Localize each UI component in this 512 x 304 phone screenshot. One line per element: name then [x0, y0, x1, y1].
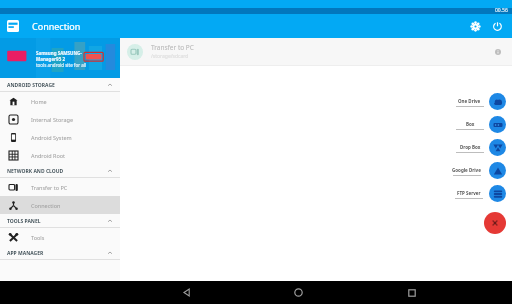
button[interactable]: Internal Storage [0, 110, 120, 128]
button[interactable]: Google Drive [449, 162, 506, 179]
button[interactable]: Home [242, 281, 355, 304]
button[interactable]: Transfer to PC [120, 38, 512, 65]
staticText: ANDROID STORAGE [7, 82, 55, 89]
staticText: 00.56 [495, 7, 508, 14]
staticText: FTP Server [457, 190, 481, 196]
button[interactable]: Home [0, 92, 120, 110]
staticText: Transfer to PC [151, 43, 194, 52]
button[interactable]: Info [491, 45, 505, 59]
staticText: Samsung SAMSUNG- [36, 50, 82, 56]
button[interactable]: Back [130, 281, 242, 304]
button[interactable]: Power [486, 15, 508, 37]
staticText: Connection [32, 20, 81, 32]
button[interactable]: Android System [0, 128, 120, 146]
staticText: Connection [31, 202, 61, 209]
button[interactable]: Open navigation drawer [6, 19, 20, 33]
button[interactable]: FTP Server [454, 185, 506, 202]
button[interactable]: Android Root [0, 146, 120, 164]
button[interactable]: One Drive [455, 93, 506, 110]
button[interactable]: Settings [464, 15, 486, 37]
staticText: tools android site for all [36, 62, 87, 68]
staticText: Drop Box [460, 144, 481, 150]
button[interactable]: APP MANAGER [0, 246, 120, 260]
staticText: One Drive [458, 98, 481, 104]
button[interactable]: Advertisement banner [0, 38, 120, 78]
button[interactable]: Drop Box [456, 139, 506, 156]
button[interactable]: Box [456, 116, 506, 133]
staticText: Google Drive [452, 167, 481, 173]
staticText: Manager95 2 [36, 56, 65, 62]
button[interactable]: ANDROID STORAGE [0, 78, 120, 92]
staticText: Transfer to PC [31, 184, 68, 191]
button[interactable]: Close menu [484, 212, 506, 234]
button[interactable]: Transfer to PC [0, 178, 120, 196]
staticText: Tools [31, 234, 45, 241]
staticText: NETWORK AND CLOUD [7, 168, 64, 175]
button[interactable]: Recent apps [355, 281, 468, 304]
staticText: APP MANAGER [7, 250, 44, 257]
button[interactable]: Tools [0, 228, 120, 246]
staticText: Internal Storage [31, 116, 74, 123]
staticText: Android System [31, 134, 72, 141]
staticText: Android Root [31, 152, 66, 159]
staticText: /storage/sdcard [151, 53, 189, 60]
button[interactable]: NETWORK AND CLOUD [0, 164, 120, 178]
button[interactable]: TOOLS PANEL [0, 214, 120, 228]
staticText: TOOLS PANEL [7, 218, 41, 225]
staticText: Home [31, 98, 47, 105]
button[interactable]: Connection [0, 196, 120, 214]
staticText: Box [466, 121, 475, 127]
